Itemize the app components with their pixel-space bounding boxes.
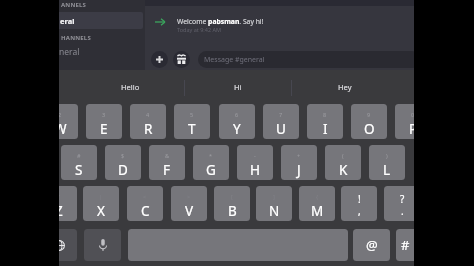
- button[interactable]: !: [341, 186, 377, 221]
- staticText: J: [297, 161, 301, 179]
- button[interactable]: #: [61, 145, 97, 180]
- staticText: Hi: [234, 82, 242, 92]
- button[interactable]: &: [149, 145, 185, 180]
- staticText: W: [59, 120, 67, 138]
- staticText: !: [358, 192, 361, 206]
- staticText: 4: [146, 111, 150, 118]
- staticText: G: [206, 161, 216, 179]
- staticText: neral: [59, 46, 80, 58]
- button[interactable]: 9: [351, 104, 387, 139]
- staticText: Welcome pabsman. Say hi!: [177, 17, 264, 26]
- button[interactable]: 3: [86, 104, 122, 139]
- button[interactable]: Hey: [291, 70, 398, 104]
- staticText: +: [297, 152, 301, 159]
- button[interactable]: {: [299, 186, 335, 221]
- staticText: Hey: [338, 82, 352, 92]
- staticText: Y: [233, 120, 241, 138]
- button[interactable]: $: [105, 145, 141, 180]
- staticText: E: [100, 120, 108, 138]
- staticText: L: [383, 161, 391, 179]
- staticText: 9: [367, 111, 371, 118]
- button[interactable]: eral: [59, 12, 143, 29]
- staticText: $: [121, 152, 125, 159]
- button[interactable]: Voice input: [84, 229, 121, 261]
- button[interactable]: ": [59, 186, 77, 221]
- staticText: T: [188, 120, 196, 138]
- staticText: V: [185, 202, 194, 220]
- staticText: Z: [59, 202, 63, 220]
- staticText: .: [401, 204, 404, 218]
- staticText: HANNELS: [61, 34, 91, 42]
- staticText: (: [342, 152, 344, 159]
- button[interactable]: Message #general: [198, 51, 414, 68]
- staticText: R: [144, 120, 153, 138]
- button[interactable]: Hi: [184, 70, 291, 104]
- button[interactable]: 4: [130, 104, 166, 139]
- staticText: P: [409, 120, 414, 138]
- button[interactable]: ?: [384, 186, 414, 221]
- button[interactable]: <: [127, 186, 163, 221]
- button[interactable]: Send a gift: [173, 51, 190, 68]
- staticText: 2: [59, 111, 62, 118]
- button[interactable]: Hello: [77, 70, 184, 104]
- button[interactable]: 6: [219, 104, 255, 139]
- staticText: M: [311, 202, 324, 220]
- staticText: ,: [358, 204, 361, 218]
- button[interactable]: -: [237, 145, 273, 180]
- button[interactable]: 2: [59, 104, 78, 139]
- button[interactable]: 7: [263, 104, 299, 139]
- staticText: ?: [400, 192, 405, 206]
- staticText: H: [250, 161, 261, 179]
- button[interactable]: Change keyboard language: [59, 229, 77, 261]
- staticText: Message #general: [204, 55, 265, 65]
- button[interactable]: Add attachment: [151, 51, 168, 68]
- staticText: I: [323, 120, 328, 138]
- staticText: X: [97, 202, 105, 220]
- button[interactable]: 5: [174, 104, 210, 139]
- staticText: N: [269, 202, 280, 220]
- button[interactable]: *: [193, 145, 229, 180]
- staticText: *: [209, 152, 213, 159]
- button[interactable]: [: [214, 186, 250, 221]
- button[interactable]: ): [369, 145, 405, 180]
- staticText: Hello: [121, 82, 140, 92]
- staticText: K: [339, 161, 348, 179]
- staticText: 8: [323, 111, 327, 118]
- staticText: ): [386, 152, 388, 159]
- staticText: #: [401, 236, 410, 254]
- button[interactable]: ]: [256, 186, 292, 221]
- staticText: Today at 9:42 AM: [177, 26, 222, 33]
- button[interactable]: 0: [395, 104, 414, 139]
- staticText: -: [254, 152, 256, 159]
- button[interactable]: >: [171, 186, 207, 221]
- button[interactable]: #: [396, 229, 414, 261]
- staticText: @: [366, 236, 378, 254]
- staticText: S: [75, 161, 83, 179]
- staticText: 0: [411, 111, 414, 118]
- button[interactable]: @: [353, 229, 390, 261]
- staticText: F: [163, 161, 171, 179]
- staticText: eral: [60, 16, 75, 26]
- staticText: ANNELS: [61, 1, 87, 9]
- staticText: 7: [279, 111, 283, 118]
- staticText: B: [228, 202, 237, 220]
- button[interactable]: 8: [307, 104, 343, 139]
- button[interactable]: |: [83, 186, 119, 221]
- staticText: 3: [102, 111, 106, 118]
- button[interactable]: (: [325, 145, 361, 180]
- staticText: C: [141, 202, 150, 220]
- staticText: U: [276, 120, 286, 138]
- staticText: #: [77, 152, 81, 159]
- button[interactable]: +: [281, 145, 317, 180]
- staticText: 5: [190, 111, 194, 118]
- staticText: &: [165, 152, 170, 159]
- staticText: D: [118, 161, 128, 179]
